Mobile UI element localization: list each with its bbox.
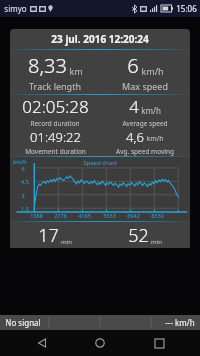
staticText: Average speed (122, 119, 168, 128)
staticText: No signal (5, 317, 41, 328)
staticText: 01:49:22 (30, 128, 81, 146)
staticText: min (61, 238, 72, 246)
button[interactable]: 6 (100, 50, 190, 94)
staticText: Movement duration (25, 147, 86, 156)
button[interactable]: 8,33 (10, 50, 100, 94)
staticText: Speed chart (83, 159, 117, 167)
staticText: min (151, 238, 162, 246)
button[interactable]: 02:05:28 (10, 95, 100, 128)
staticText: km/h (146, 134, 164, 144)
staticText: --- km/h (165, 317, 195, 328)
staticText: Record duration (30, 119, 80, 128)
staticText: simyo (4, 3, 27, 14)
staticText: km (69, 65, 83, 77)
staticText: Avg. speed moving (116, 147, 174, 156)
button[interactable]: Home (83, 330, 117, 356)
staticText: 3 (21, 192, 25, 199)
button[interactable]: Back (25, 330, 59, 356)
staticText: 6 (21, 165, 25, 172)
staticText: Track length (29, 80, 81, 92)
button[interactable]: 23 jul. 2016 12:20:24 (10, 29, 190, 248)
button[interactable]: Recent apps (142, 330, 176, 356)
button[interactable]: 01:49:22 (10, 128, 100, 156)
staticText: 4165 (78, 212, 91, 219)
staticText: 4 (129, 95, 139, 118)
staticText: km/h (141, 105, 161, 116)
staticText: 15:06 (176, 3, 197, 14)
staticText: 8330 (151, 212, 164, 219)
staticText: 52 (128, 223, 149, 248)
button[interactable]: 52 (100, 222, 190, 248)
staticText: 5553 (103, 212, 116, 219)
staticText: 8,33 (28, 52, 67, 79)
staticText: km/h (141, 65, 164, 77)
button[interactable]: 4,6 (100, 128, 190, 156)
staticText: 2776 (54, 212, 67, 219)
button[interactable]: 17 (10, 222, 100, 248)
staticText: 6 (127, 52, 139, 79)
staticText: 1,5 (21, 205, 29, 212)
button[interactable]: 4 (100, 95, 190, 128)
staticText: 17 (38, 223, 59, 248)
staticText: Max speed (122, 80, 168, 92)
staticText: 4,5 (21, 178, 29, 185)
button[interactable]: No signal (0, 315, 200, 330)
staticText: 02:05:28 (22, 95, 89, 118)
staticText: km/h (13, 158, 27, 165)
staticText: 1388 (30, 212, 43, 219)
staticText: 23 jul. 2016 12:20:24 (51, 32, 149, 46)
button[interactable]: Speed chart (10, 157, 190, 221)
staticText: 4,6 (126, 128, 144, 146)
staticText: 6942 (127, 212, 140, 219)
